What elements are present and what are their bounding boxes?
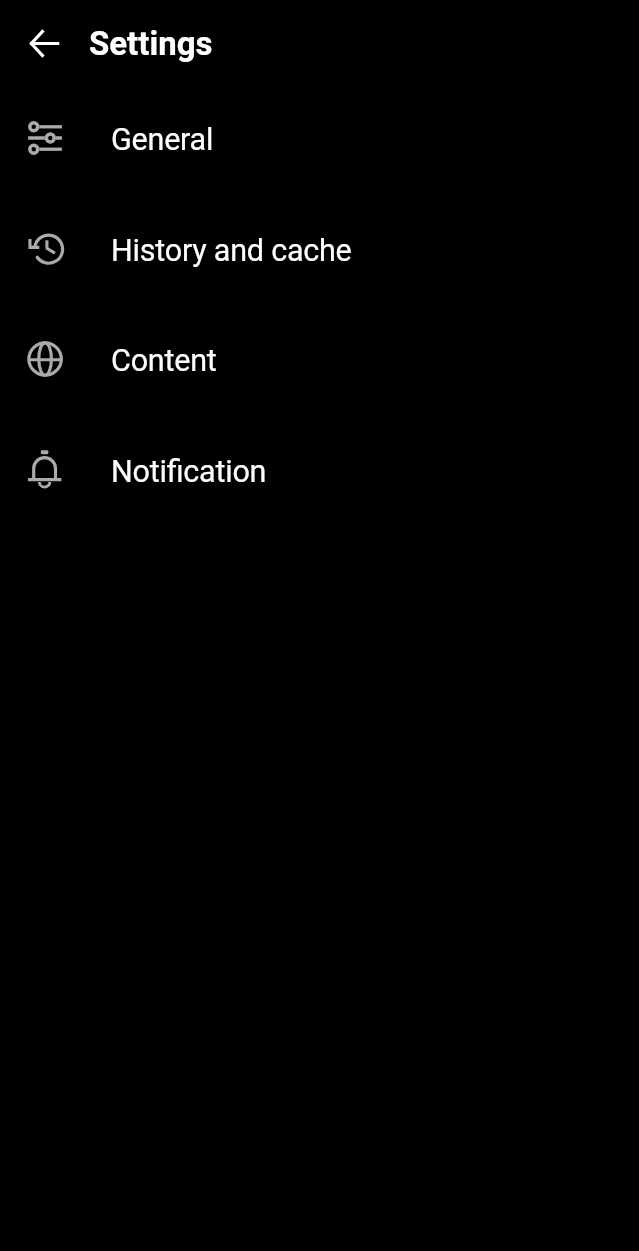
button[interactable]: History and cache bbox=[0, 195, 639, 306]
staticText: Notification bbox=[111, 454, 267, 490]
staticText: History and cache bbox=[111, 233, 352, 269]
button[interactable]: Back bbox=[17, 16, 73, 72]
button[interactable]: Content bbox=[0, 305, 639, 416]
staticText: Content bbox=[111, 343, 217, 379]
staticText: General bbox=[111, 122, 214, 158]
button[interactable]: General bbox=[0, 84, 639, 195]
staticText: Settings bbox=[89, 24, 213, 63]
button[interactable]: Notification bbox=[0, 416, 639, 527]
